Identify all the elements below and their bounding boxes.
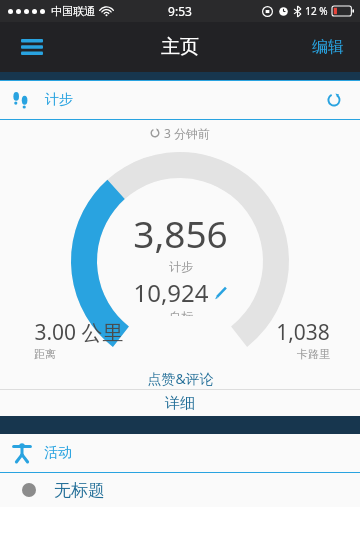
staticText: 自标 (169, 309, 193, 316)
staticText: 中国联通 (51, 4, 95, 18)
button[interactable]: 编辑 (306, 31, 350, 63)
staticText: 12 % (305, 4, 328, 18)
button[interactable]: Refresh (317, 83, 351, 117)
staticText: 3,856 (133, 208, 228, 258)
button[interactable]: 活动 (0, 434, 360, 472)
staticText: 活动 (44, 444, 72, 462)
button[interactable]: 无标题 (0, 473, 360, 507)
button[interactable]: Menu (10, 25, 54, 69)
staticText: 编辑 (312, 37, 344, 57)
staticText: 3 分钟前 (164, 125, 210, 141)
staticText: 卡路里 (297, 347, 330, 361)
staticText: 10,924 (133, 276, 209, 309)
button[interactable]: 点赞&评论 (0, 367, 360, 389)
button[interactable]: 详细 (0, 390, 360, 416)
staticText: 主页 (161, 35, 199, 59)
button[interactable]: Edit goal (214, 286, 228, 300)
staticText: 详细 (165, 394, 195, 413)
staticText: 点赞&评论 (147, 369, 214, 388)
staticText: 计步 (45, 91, 73, 109)
staticText: 3.00 公里 (34, 318, 124, 347)
staticText: 1,038 (276, 318, 330, 347)
staticText: 计步 (169, 259, 193, 274)
staticText: 9:53 (168, 3, 192, 19)
button[interactable]: 计步 (0, 81, 360, 119)
staticText: 距离 (34, 347, 56, 361)
staticText: 无标题 (54, 480, 105, 501)
